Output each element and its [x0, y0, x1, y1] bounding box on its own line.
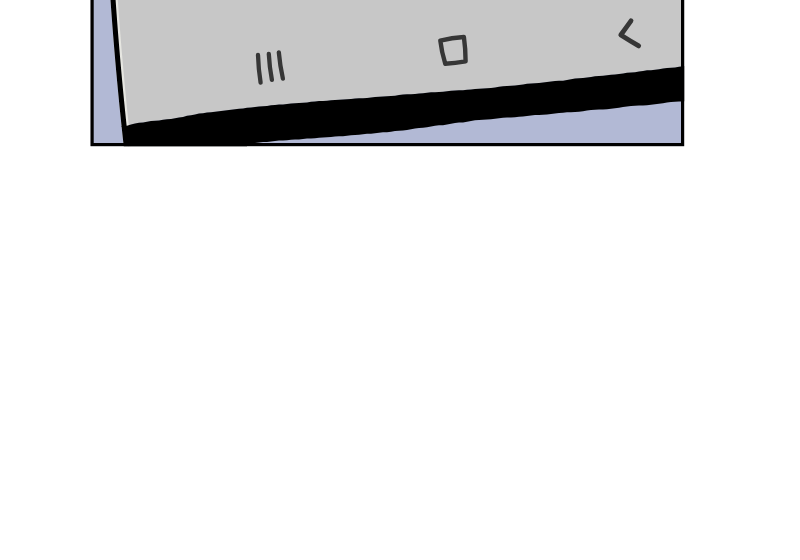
button[interactable]: Back	[607, 9, 655, 57]
button[interactable]: Recent apps	[244, 44, 292, 92]
button[interactable]: Home	[428, 26, 478, 76]
